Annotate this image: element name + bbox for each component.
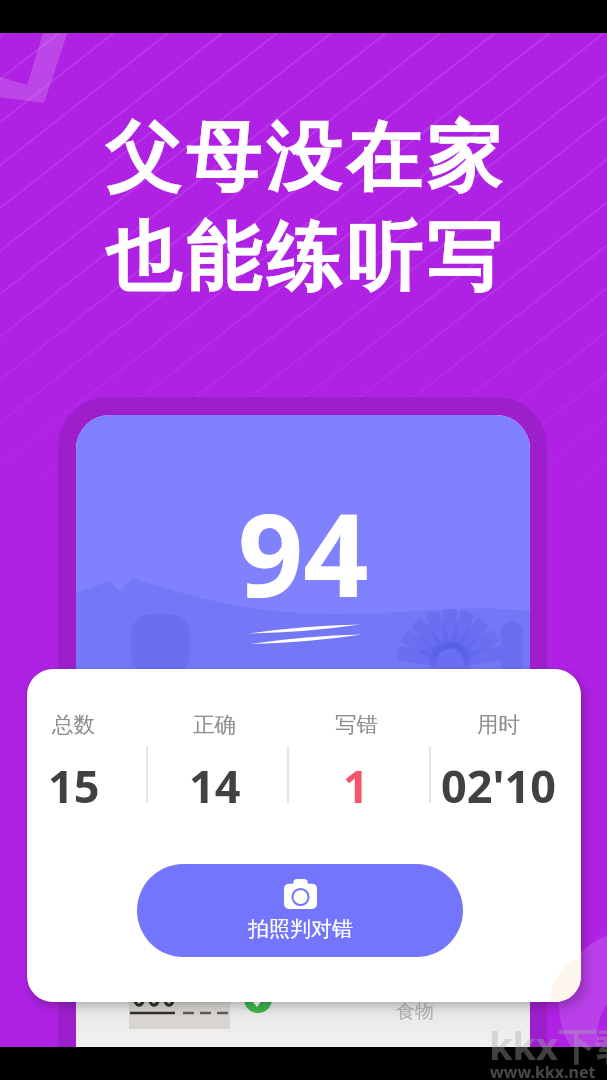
button[interactable]: 总数 [27, 711, 144, 816]
staticText: 14 [189, 755, 241, 816]
staticText: www.kkx.net [490, 1061, 596, 1080]
staticText: 15 [48, 755, 100, 816]
staticText: 总数 [52, 711, 95, 738]
button[interactable]: 写错 [285, 711, 427, 816]
staticText: 94 [238, 475, 369, 630]
button[interactable]: 用时 [427, 711, 569, 816]
staticText: 食物 [396, 1000, 434, 1024]
staticText: 也能练听写 [103, 211, 504, 305]
staticText: 拍照判对错 [248, 916, 353, 942]
staticText: 父母没在家 [103, 111, 504, 205]
staticText: 用时 [477, 711, 520, 738]
button[interactable]: 拍照判对错 [137, 864, 463, 957]
staticText: kkx下载 [489, 1019, 607, 1071]
other: 拍照判对错 [284, 879, 317, 909]
staticText: 02'10 [441, 755, 556, 816]
staticText: 写错 [335, 711, 378, 738]
button[interactable]: 正确 [144, 711, 285, 816]
staticText: 1 [343, 755, 369, 816]
staticText: 正确 [193, 711, 236, 738]
